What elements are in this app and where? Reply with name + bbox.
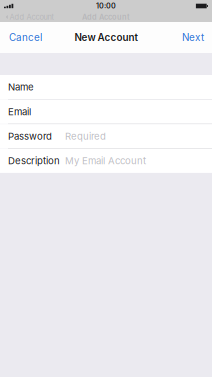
staticText: Required	[65, 130, 106, 142]
staticText: My Email Account	[65, 155, 146, 167]
staticText: Next	[182, 31, 204, 43]
staticText: Description	[8, 155, 60, 167]
button[interactable]: Name	[0, 75, 212, 99]
button[interactable]: Description	[0, 149, 212, 173]
button[interactable]: Password	[0, 124, 212, 148]
button[interactable]: Email	[0, 100, 212, 124]
button[interactable]: Next	[172, 24, 212, 50]
staticText: Add Account	[82, 12, 130, 21]
staticText: Password	[8, 130, 52, 142]
staticText: New Account	[74, 31, 137, 43]
staticText: Email	[8, 106, 31, 117]
staticText: Cancel	[9, 31, 42, 43]
staticText: Name	[8, 81, 34, 93]
button[interactable]: Cancel	[0, 24, 52, 50]
staticText: 10:00	[96, 2, 116, 10]
staticText: Add Account	[9, 12, 53, 21]
